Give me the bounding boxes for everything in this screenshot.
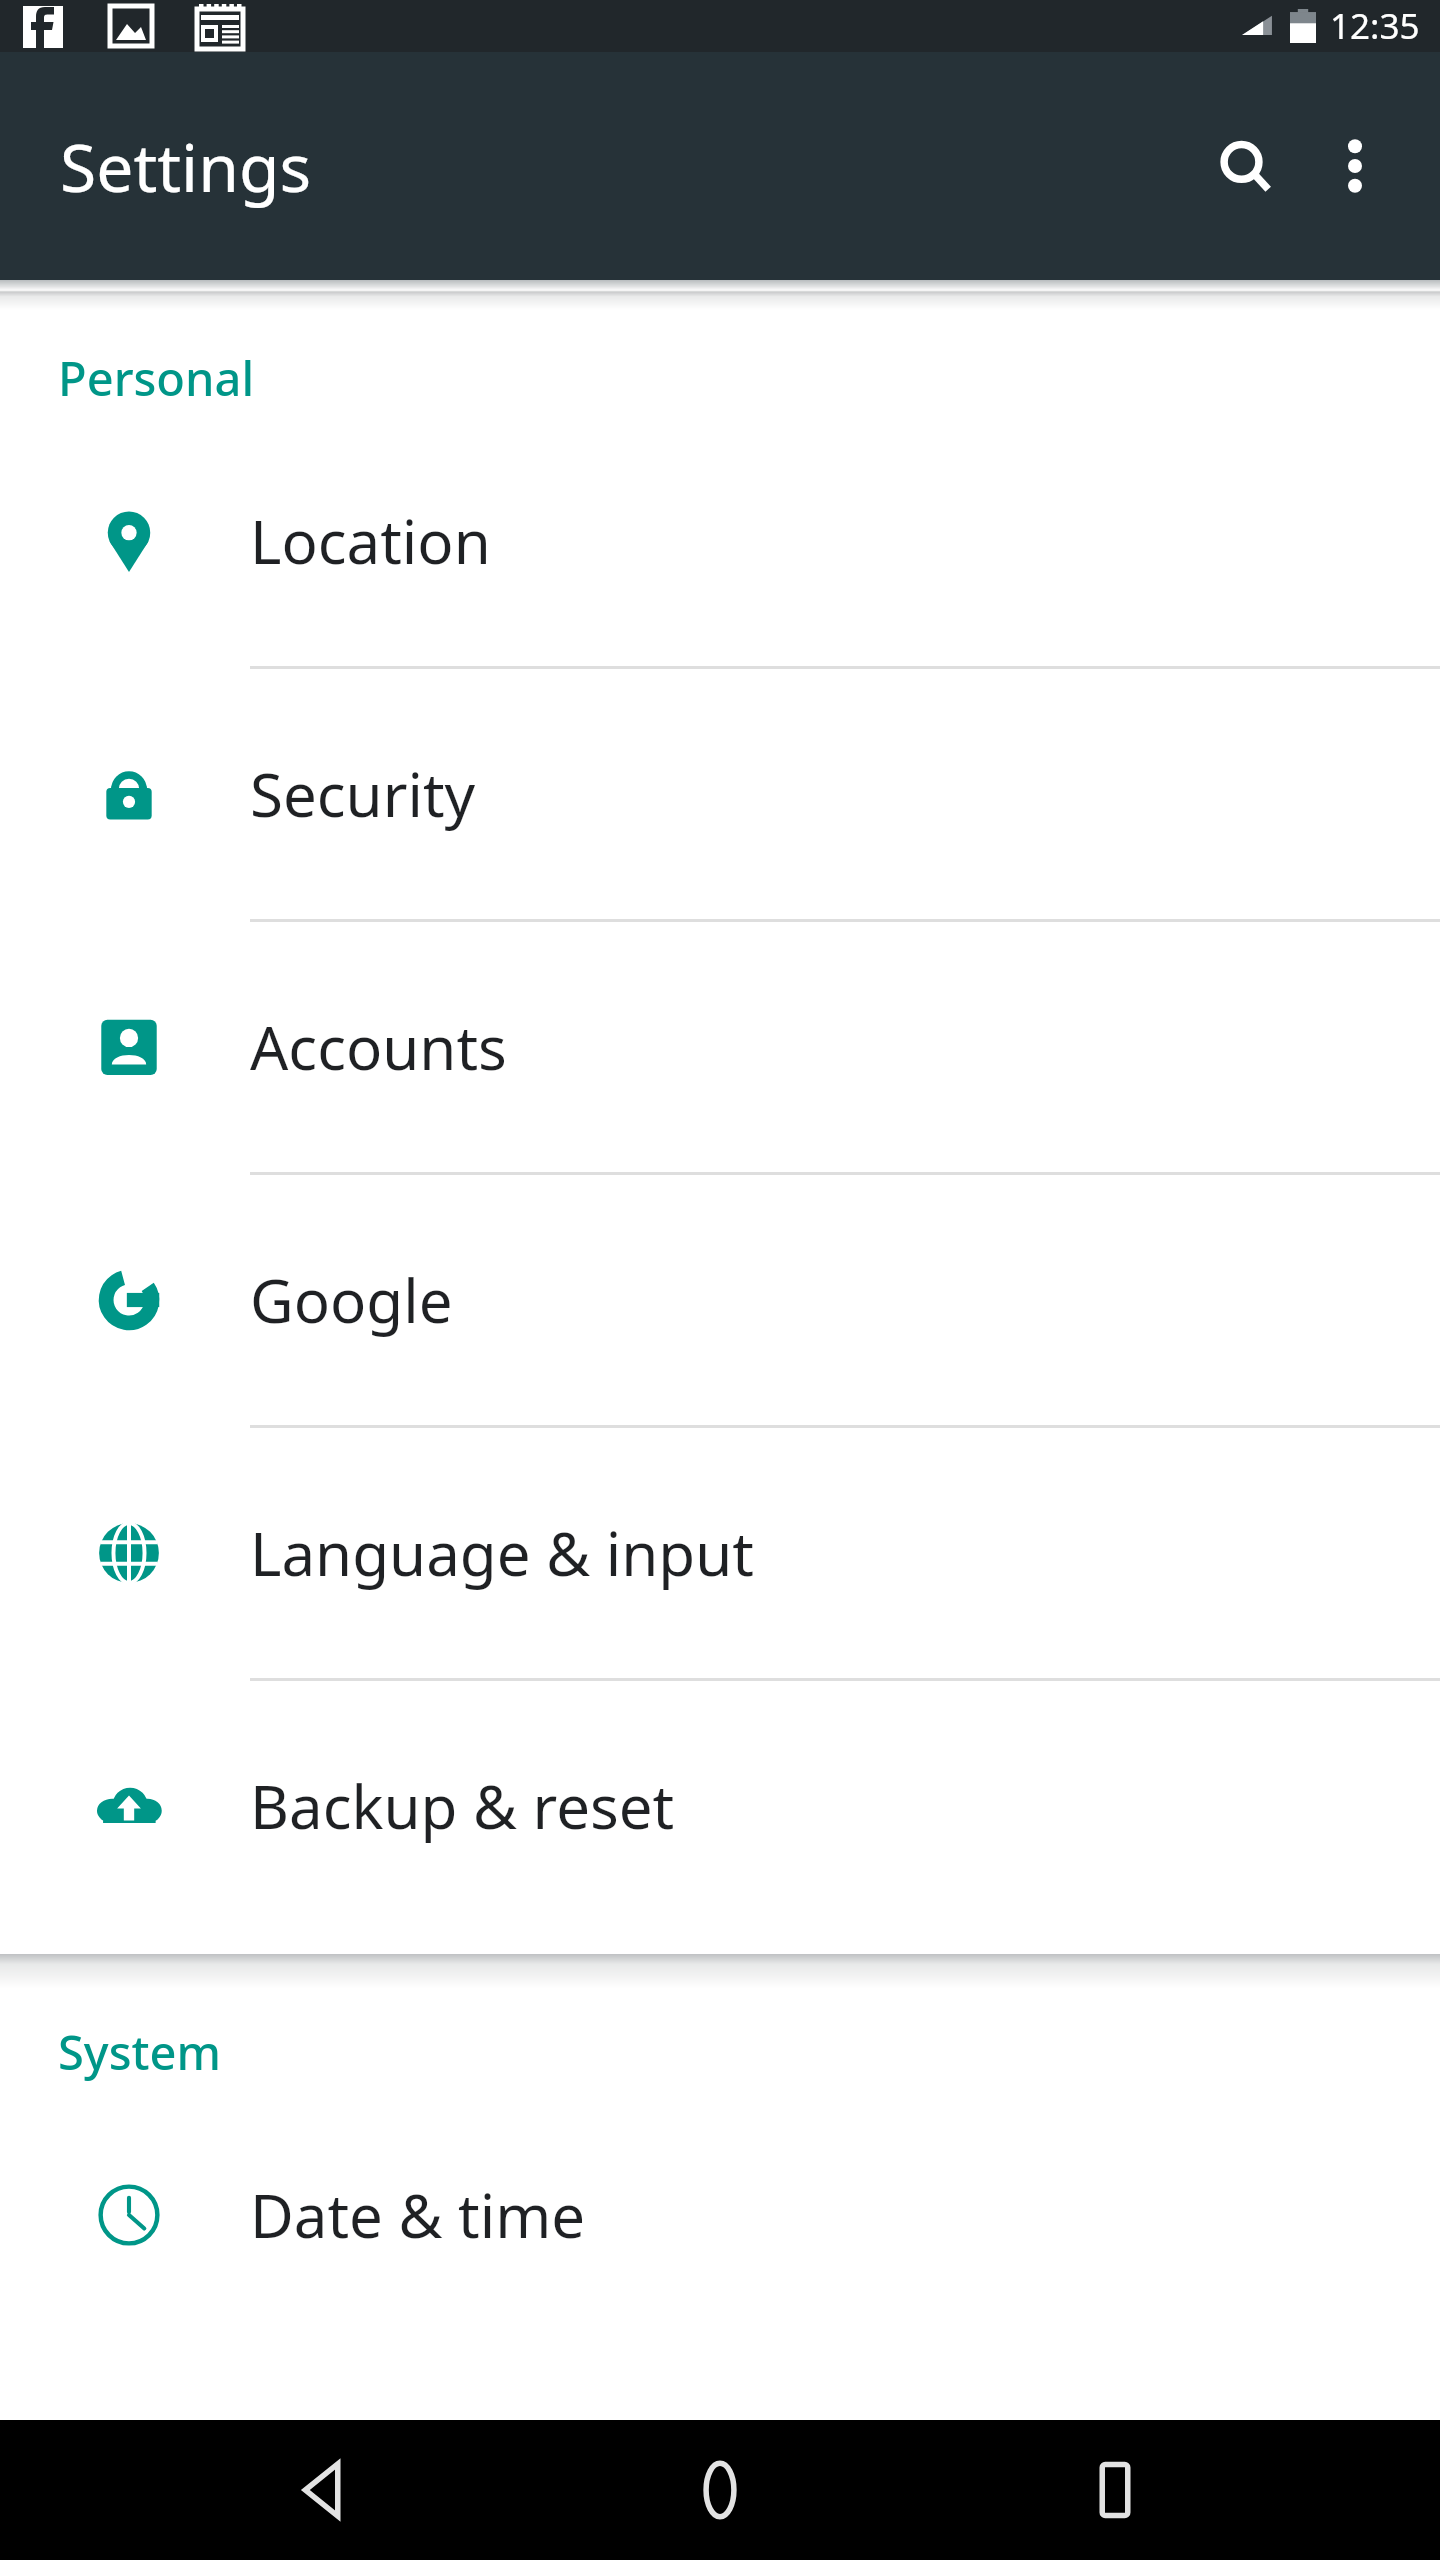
staticText: Language & input [250, 1512, 754, 1594]
button[interactable]: Accounts [0, 922, 1440, 1175]
button[interactable]: Home [650, 2420, 790, 2560]
staticText: Location [250, 500, 491, 582]
staticText: System [58, 2020, 221, 2084]
staticText: Settings [60, 121, 312, 211]
button[interactable]: Google [0, 1175, 1440, 1428]
button[interactable]: Back [255, 2420, 395, 2560]
staticText: Personal [58, 346, 255, 410]
staticText: Security [250, 753, 476, 835]
staticText: 12:35 [1330, 2, 1420, 50]
button[interactable]: Backup & reset [0, 1681, 1440, 1931]
button[interactable]: Security [0, 669, 1440, 922]
button[interactable]: Search [1190, 111, 1300, 221]
button[interactable]: Location [0, 416, 1440, 669]
staticText: Accounts [250, 1006, 507, 1088]
button[interactable]: Date & time [0, 2090, 1440, 2340]
button[interactable]: Recent apps [1045, 2420, 1185, 2560]
button[interactable]: Language & input [0, 1428, 1440, 1681]
staticText: Date & time [250, 2174, 586, 2256]
staticText: Google [250, 1259, 453, 1341]
staticText: Backup & reset [250, 1765, 675, 1847]
button[interactable]: More options [1300, 111, 1410, 221]
